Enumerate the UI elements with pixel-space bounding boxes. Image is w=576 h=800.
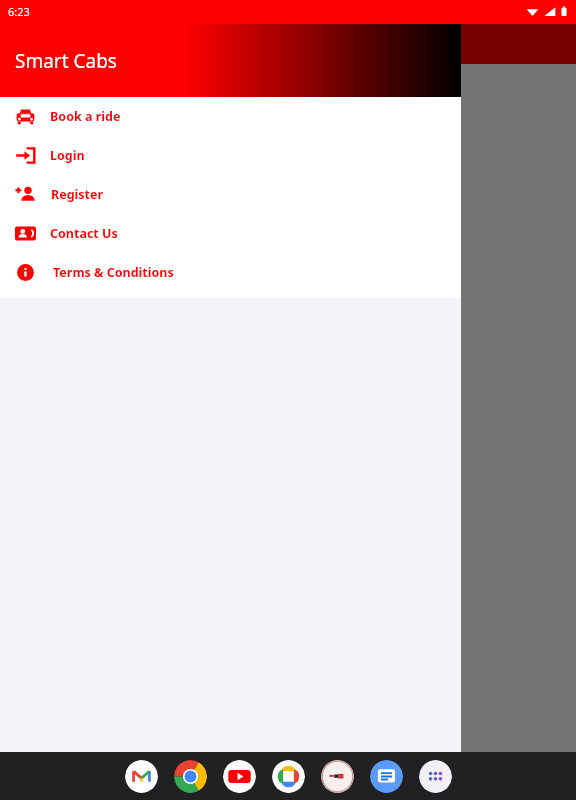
button[interactable]: Book a ride	[0, 97, 461, 136]
staticText: Smart Cabs	[15, 48, 117, 74]
staticText: Contact Us	[50, 225, 118, 242]
button[interactable]: Messages	[370, 760, 403, 793]
staticText: Book a ride	[50, 108, 121, 125]
staticText: Register	[51, 186, 104, 203]
button[interactable]: Gmail	[125, 760, 158, 793]
button[interactable]: Contact Us	[0, 214, 461, 253]
button[interactable]: All apps	[419, 760, 452, 793]
button[interactable]: App	[321, 760, 354, 793]
button[interactable]: Photos	[272, 760, 305, 793]
button[interactable]: Login	[0, 136, 461, 175]
button[interactable]: Register	[0, 175, 461, 214]
button[interactable]: Chrome	[174, 760, 207, 793]
button[interactable]: YouTube	[223, 760, 256, 793]
staticText: Login	[50, 147, 85, 164]
staticText: 6:23	[8, 4, 30, 19]
button[interactable]: Terms & Conditions	[0, 253, 461, 292]
staticText: Terms & Conditions	[53, 264, 174, 281]
